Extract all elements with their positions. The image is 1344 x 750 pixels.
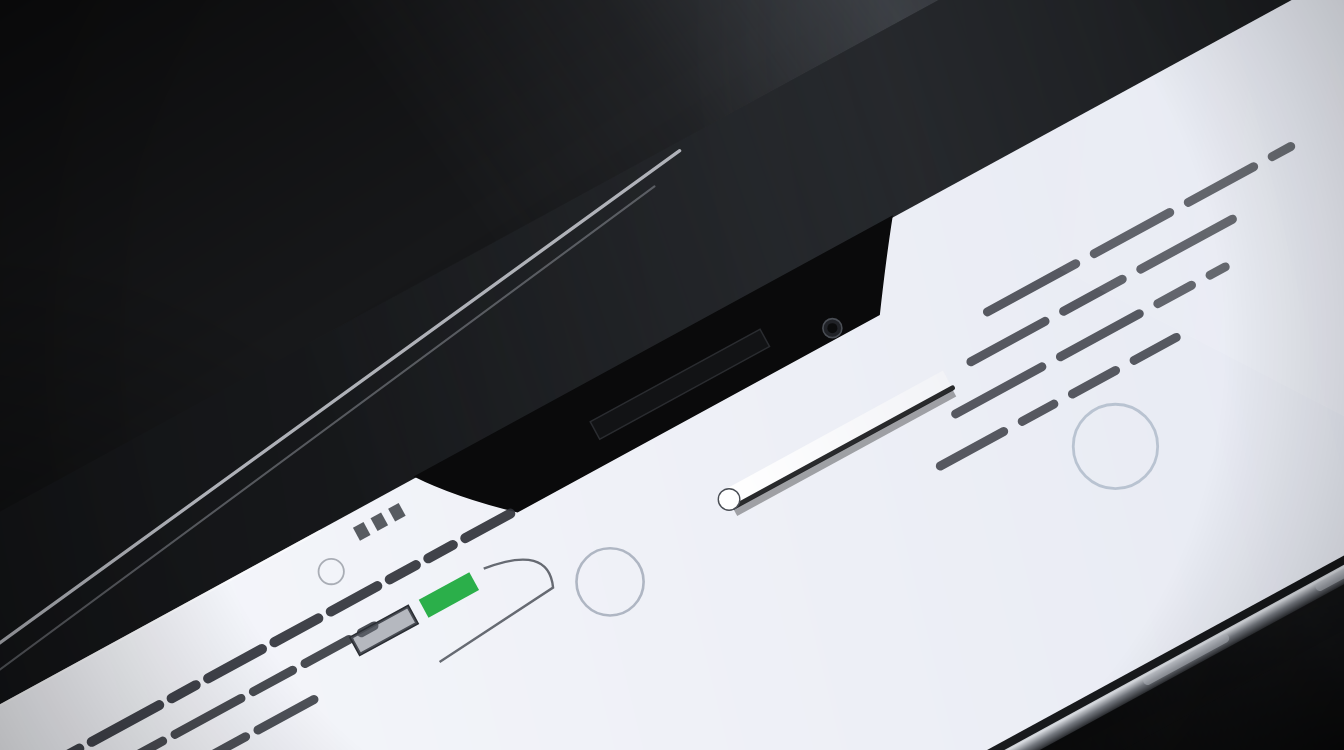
- button[interactable]: Phone showing app screen: [0, 0, 1344, 750]
